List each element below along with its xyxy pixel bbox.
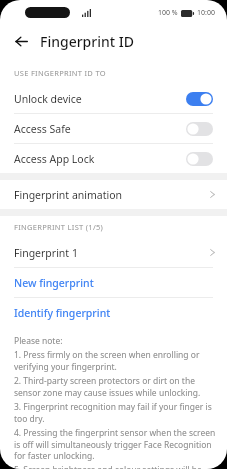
- staticText: Please note:: [14, 335, 63, 347]
- staticText: Access Safe: [14, 122, 71, 136]
- button[interactable]: New fingerprint: [0, 268, 227, 297]
- staticText: 4. Pressing the fingerprint sensor when …: [14, 427, 217, 462]
- staticText: Fingerprint ID: [40, 32, 134, 51]
- staticText: Fingerprint animation: [14, 188, 123, 202]
- button[interactable]: Back: [10, 30, 32, 52]
- button[interactable]: Fingerprint animation: [0, 180, 227, 209]
- staticText: 1. Press firmly on the screen when enrol…: [14, 349, 217, 373]
- button[interactable]: Fingerprint 1: [0, 238, 227, 267]
- button[interactable]: Unlock device: [0, 84, 227, 113]
- staticText: 10:00: [197, 8, 215, 18]
- staticText: FINGERPRINT LIST (1/5): [14, 222, 104, 232]
- staticText: Access App Lock: [14, 152, 95, 166]
- staticText: 3. Fingerprint recognition may fail if y…: [14, 401, 217, 425]
- button[interactable]: Access Safe: [0, 114, 227, 143]
- staticText: 5. Screen brightness and colour settings…: [14, 464, 217, 469]
- staticText: 2. Third-party screen protectors or dirt…: [14, 375, 217, 399]
- staticText: USE FINGERPRINT ID TO: [14, 68, 106, 78]
- staticText: Identify fingerprint: [14, 306, 111, 320]
- staticText: New fingerprint: [14, 276, 94, 290]
- staticText: 100 %: [158, 8, 178, 18]
- staticText: Fingerprint 1: [14, 246, 78, 260]
- button[interactable]: Access App Lock: [0, 144, 227, 173]
- staticText: Unlock device: [14, 92, 82, 106]
- button[interactable]: Identify fingerprint: [0, 298, 227, 327]
